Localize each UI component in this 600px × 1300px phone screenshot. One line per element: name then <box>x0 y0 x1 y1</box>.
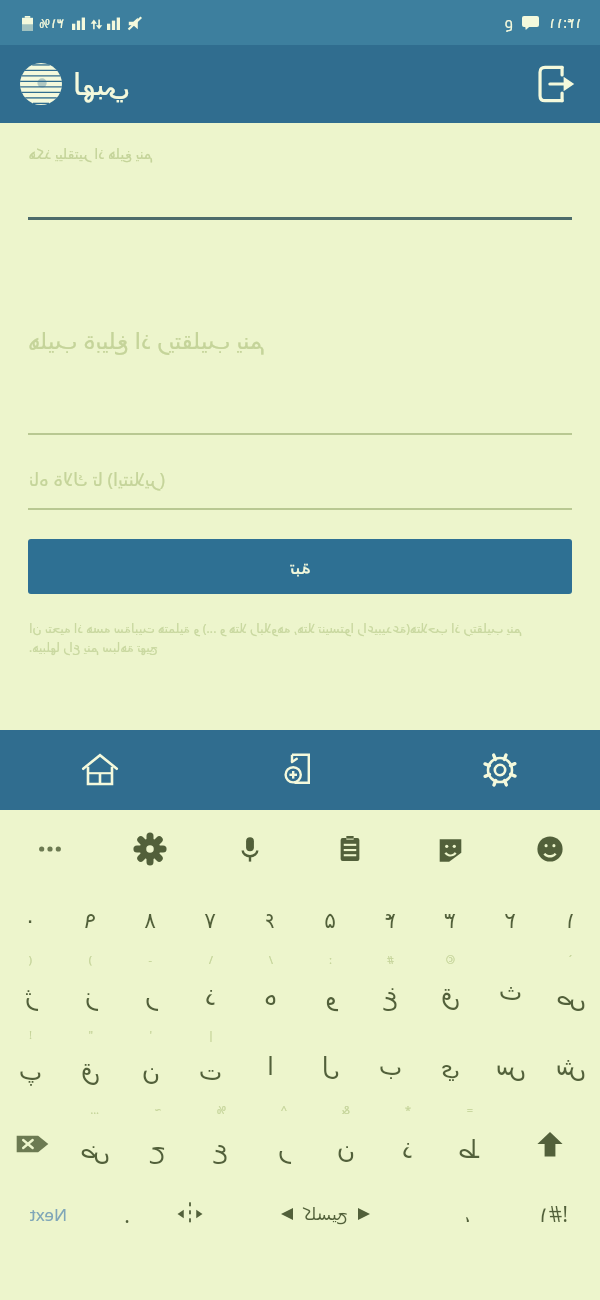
staticText: س <box>495 1052 526 1081</box>
staticText: ض <box>79 1135 110 1164</box>
button[interactable]: ش <box>540 1029 600 1104</box>
staticText: ` <box>568 952 572 967</box>
button[interactable]: % <box>189 1104 252 1184</box>
staticText: تبة <box>289 556 311 578</box>
staticText: " <box>88 1027 93 1042</box>
staticText: ۹ <box>84 908 96 934</box>
button[interactable]: ۸ <box>120 888 180 954</box>
button[interactable]: Stickers <box>400 810 500 888</box>
button[interactable]: Move cursor <box>158 1184 221 1244</box>
button[interactable]: | <box>180 1029 240 1104</box>
button[interactable]: ^ <box>252 1104 314 1184</box>
staticText: / <box>268 952 273 967</box>
staticText: و <box>324 982 337 1011</box>
staticText: - <box>148 952 152 967</box>
button[interactable]: ! <box>0 1029 60 1104</box>
staticText: ۴ <box>384 908 396 934</box>
button[interactable]: Shift <box>500 1104 600 1184</box>
staticText: : <box>329 952 332 967</box>
staticText: ۲ <box>504 908 516 934</box>
staticText: ۵ <box>324 908 336 934</box>
staticText: ۰ <box>24 908 36 934</box>
staticText: ۱ <box>564 908 576 934</box>
button[interactable]: ~ <box>126 1104 189 1184</box>
button[interactable]: … <box>63 1104 126 1184</box>
staticText: ي <box>440 1052 460 1081</box>
button[interactable]: © <box>420 954 480 1029</box>
staticText: ۷ <box>204 908 216 934</box>
staticText: ر <box>144 982 157 1011</box>
staticText: ل <box>321 1052 340 1081</box>
staticText: ان ىتحيه اذ هسه سةلبيت هتملية و (... و ه… <box>28 620 522 637</box>
staticText: ط <box>457 1135 481 1164</box>
button[interactable]: - <box>120 954 180 1029</box>
button[interactable]: Delete <box>0 1104 63 1184</box>
button[interactable]: ` <box>540 954 600 1029</box>
button[interactable]: ۵ <box>300 888 360 954</box>
staticText: ز <box>84 982 97 1011</box>
staticText: = <box>466 1102 473 1117</box>
staticText: & <box>341 1102 350 1117</box>
button[interactable]: Settings <box>400 730 600 810</box>
button[interactable]: = <box>438 1104 500 1184</box>
button[interactable]: ۴ <box>360 888 420 954</box>
staticText: هيبلها راع ينم سباهة تهيج. <box>28 639 158 656</box>
button[interactable]: * <box>376 1104 438 1184</box>
staticText: ن <box>141 1057 160 1086</box>
button[interactable]: Clipboard <box>300 810 400 888</box>
button[interactable]: / <box>240 954 300 1029</box>
button[interactable]: ي <box>420 1029 480 1104</box>
button[interactable]: ۹ <box>60 888 120 954</box>
button[interactable]: : <box>300 954 360 1029</box>
button[interactable]: ۶ <box>240 888 300 954</box>
button[interactable]: ۳ <box>420 888 480 954</box>
button[interactable]: ب <box>360 1029 420 1104</box>
staticText: ) <box>88 952 92 967</box>
button[interactable]: Emoji <box>500 810 600 888</box>
button[interactable]: " <box>60 1029 120 1104</box>
staticText: * <box>404 1102 411 1117</box>
staticText: Next <box>29 1203 67 1226</box>
staticText: | <box>207 1027 214 1042</box>
staticText: ، <box>464 1203 471 1226</box>
staticText: هكذ ييلقتير اذ هليغ ينم <box>28 144 153 163</box>
button[interactable]: ۱ <box>540 888 600 954</box>
staticText: ۸ <box>144 908 156 934</box>
button[interactable]: Keyboard settings <box>100 810 200 888</box>
staticText: ۱۴:۱۱ <box>548 13 582 32</box>
button[interactable]: ) <box>60 954 120 1029</box>
button[interactable]: ( <box>0 954 60 1029</box>
button[interactable]: ' <box>120 1029 180 1104</box>
button[interactable]: & <box>314 1104 376 1184</box>
button[interactable]: Home <box>0 730 200 810</box>
button[interactable]: Sign out <box>530 58 582 110</box>
staticText: ع <box>213 1135 228 1164</box>
button[interactable]: More options <box>0 810 100 888</box>
button[interactable]: س <box>480 1029 540 1104</box>
staticText: ' <box>149 1027 152 1042</box>
staticText: ۶ <box>264 908 276 934</box>
button[interactable]: ۰ <box>0 888 60 954</box>
button[interactable]: ۷ <box>180 888 240 954</box>
staticText: ذ <box>204 982 216 1011</box>
button[interactable]: ۲ <box>480 888 540 954</box>
staticText: ح <box>149 1135 166 1164</box>
staticText: ق <box>80 1057 100 1086</box>
button[interactable]: ا <box>240 1029 300 1104</box>
staticText: % <box>216 1102 226 1117</box>
button[interactable]: ل <box>300 1029 360 1104</box>
button[interactable]: ، <box>429 1184 505 1244</box>
button[interactable]: كلسيح <box>221 1184 429 1244</box>
staticText: هليب ةبيلغ اذ ريتقليب ينم <box>28 324 265 355</box>
button[interactable]: !#۱ <box>505 1184 600 1244</box>
button[interactable]: New document <box>200 730 400 810</box>
button[interactable]: . <box>95 1184 158 1244</box>
button[interactable]: ث <box>480 954 540 1029</box>
button[interactable]: Next <box>0 1184 95 1244</box>
button[interactable]: # <box>360 954 420 1029</box>
button[interactable]: Voice input <box>200 810 300 888</box>
staticText: ر <box>277 1135 290 1164</box>
button[interactable]: تبة <box>28 539 572 594</box>
button[interactable]: \ <box>180 954 240 1029</box>
staticText: ت <box>198 1057 222 1086</box>
